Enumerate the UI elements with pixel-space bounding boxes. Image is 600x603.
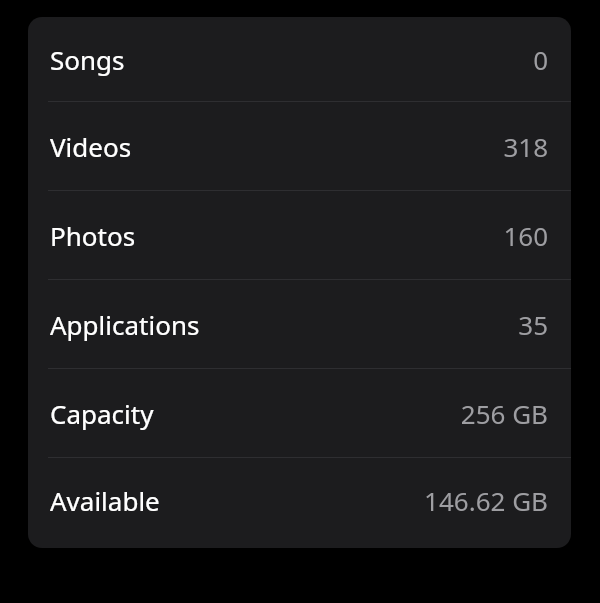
staticText: Photos <box>50 218 136 253</box>
button[interactable]: Videos <box>28 102 571 190</box>
button[interactable]: Photos <box>28 191 571 279</box>
staticText: 318 <box>503 129 548 164</box>
staticText: Capacity <box>50 396 154 431</box>
staticText: Songs <box>50 42 125 77</box>
staticText: 35 <box>518 307 548 342</box>
staticText: Videos <box>50 129 132 164</box>
staticText: 0 <box>533 42 548 77</box>
button[interactable]: Available <box>28 458 571 543</box>
staticText: 160 <box>503 218 548 253</box>
button[interactable]: Applications <box>28 280 571 368</box>
staticText: Applications <box>50 307 200 342</box>
staticText: 256 GB <box>460 396 548 431</box>
staticText: Available <box>50 483 160 518</box>
button[interactable]: Capacity <box>28 369 571 457</box>
staticText: 146.62 GB <box>424 483 548 518</box>
button[interactable]: Songs <box>28 17 571 101</box>
